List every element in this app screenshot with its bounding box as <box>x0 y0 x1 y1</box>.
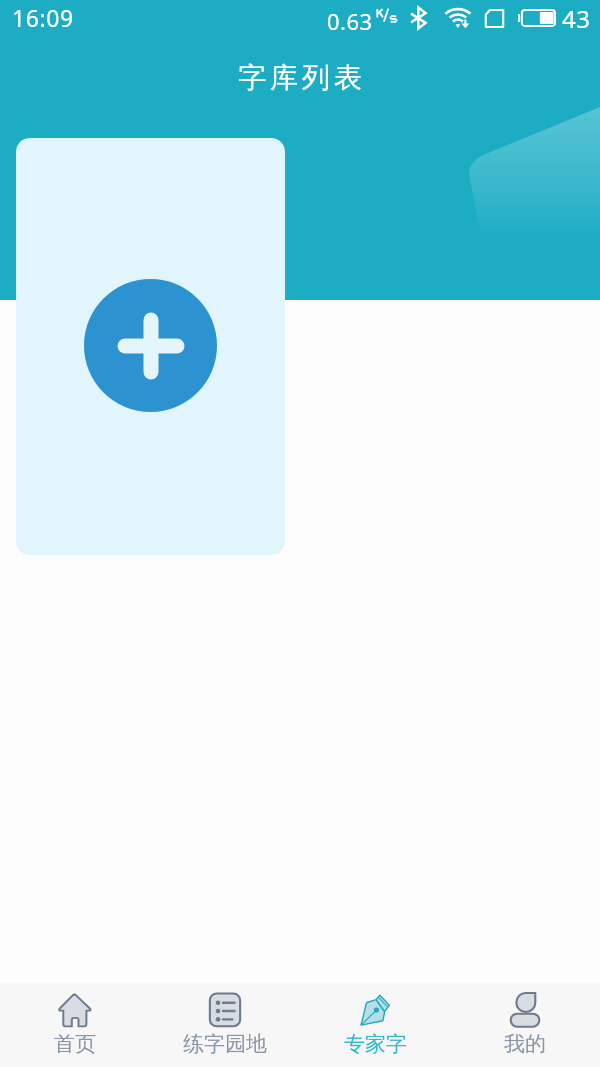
staticText: 0.63 <box>327 6 373 36</box>
staticText: 练字园地 <box>183 1031 267 1057</box>
button[interactable]: 专家字 <box>300 983 450 1067</box>
button[interactable]: 练字园地 <box>150 983 300 1067</box>
staticText: 首页 <box>54 1031 96 1057</box>
staticText: 43 <box>562 2 591 35</box>
staticText: 16:09 <box>12 2 74 33</box>
staticText: 我的 <box>504 1031 546 1057</box>
staticText: 专家字 <box>344 1031 407 1057</box>
button[interactable]: 首页 <box>0 983 150 1067</box>
staticText: 字库列表 <box>236 60 364 95</box>
button[interactable]: 添加字库 <box>16 138 285 555</box>
button[interactable]: 我的 <box>450 983 600 1067</box>
